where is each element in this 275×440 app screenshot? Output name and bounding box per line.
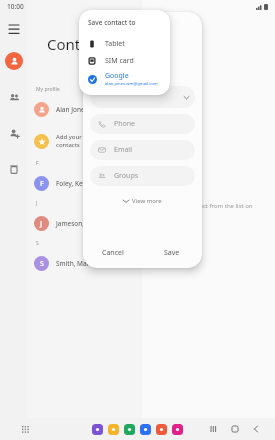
staticText: Save contact to bbox=[88, 18, 136, 27]
staticText: S bbox=[36, 240, 39, 247]
button[interactable]: S bbox=[27, 250, 142, 276]
staticText: F bbox=[40, 179, 44, 189]
staticText: Google bbox=[105, 71, 129, 81]
staticText: View more bbox=[132, 197, 162, 205]
staticText: 10:00 bbox=[7, 2, 24, 11]
staticText: Alan Jones bbox=[56, 105, 88, 114]
button[interactable]: Phone bbox=[124, 424, 135, 435]
button[interactable]: J bbox=[27, 210, 142, 236]
staticText: Select a contact from the list on the le… bbox=[164, 202, 253, 219]
staticText: My profile bbox=[36, 86, 60, 93]
staticText: S bbox=[40, 259, 44, 269]
button[interactable]: Gallery bbox=[92, 424, 103, 435]
button[interactable]: Messages bbox=[140, 424, 151, 435]
staticText: J bbox=[40, 219, 43, 229]
button[interactable]: Contacts bbox=[156, 424, 167, 435]
button[interactable]: Recents bbox=[209, 424, 219, 434]
button[interactable]: Tablet bbox=[88, 35, 164, 52]
button[interactable]: Back bbox=[251, 424, 261, 434]
button[interactable]: Groups bbox=[5, 88, 23, 106]
button[interactable]: My Files bbox=[108, 424, 119, 435]
staticText: Email bbox=[114, 145, 132, 155]
staticText: Jameson, Sara bbox=[56, 219, 100, 228]
button[interactable]: F bbox=[27, 170, 142, 196]
button[interactable]: Add your favourite contacts bbox=[27, 126, 142, 156]
staticText: J bbox=[36, 200, 38, 207]
staticText: Tablet bbox=[105, 39, 125, 49]
button[interactable]: View more bbox=[83, 194, 202, 208]
button[interactable]: Add contact bbox=[5, 124, 23, 142]
button[interactable]: Save bbox=[142, 238, 202, 268]
staticText: SIM card bbox=[105, 56, 134, 66]
button[interactable]: Home bbox=[230, 424, 240, 434]
button[interactable]: Trash bbox=[5, 160, 23, 178]
button[interactable]: Contacts bbox=[5, 52, 23, 70]
staticText: Smith, Maria bbox=[56, 259, 95, 268]
button[interactable]: Email bbox=[90, 140, 195, 160]
button[interactable]: Open navigation menu bbox=[3, 18, 25, 40]
button[interactable]: Camera bbox=[172, 424, 183, 435]
staticText: Phone bbox=[114, 119, 136, 129]
button[interactable]: SIM card bbox=[88, 52, 164, 69]
button[interactable]: Cancel bbox=[83, 238, 142, 268]
staticText: Foley, Kevin bbox=[56, 179, 92, 188]
button[interactable]: All apps bbox=[18, 422, 32, 436]
staticText: Cancel bbox=[102, 248, 124, 258]
button[interactable]: Alan Jones bbox=[27, 96, 142, 122]
button[interactable] bbox=[90, 86, 195, 108]
staticText: Groups bbox=[114, 171, 139, 181]
button[interactable]: Groups bbox=[90, 166, 195, 186]
staticText: Contacts bbox=[47, 34, 109, 54]
button[interactable]: Phone bbox=[90, 114, 195, 134]
staticText: alan.jones.wm@gmail.com bbox=[105, 81, 158, 87]
staticText: F bbox=[36, 160, 39, 167]
staticText: Add your favourite contacts bbox=[56, 133, 109, 149]
staticText: Save bbox=[164, 248, 180, 258]
button[interactable]: Google bbox=[88, 69, 164, 89]
